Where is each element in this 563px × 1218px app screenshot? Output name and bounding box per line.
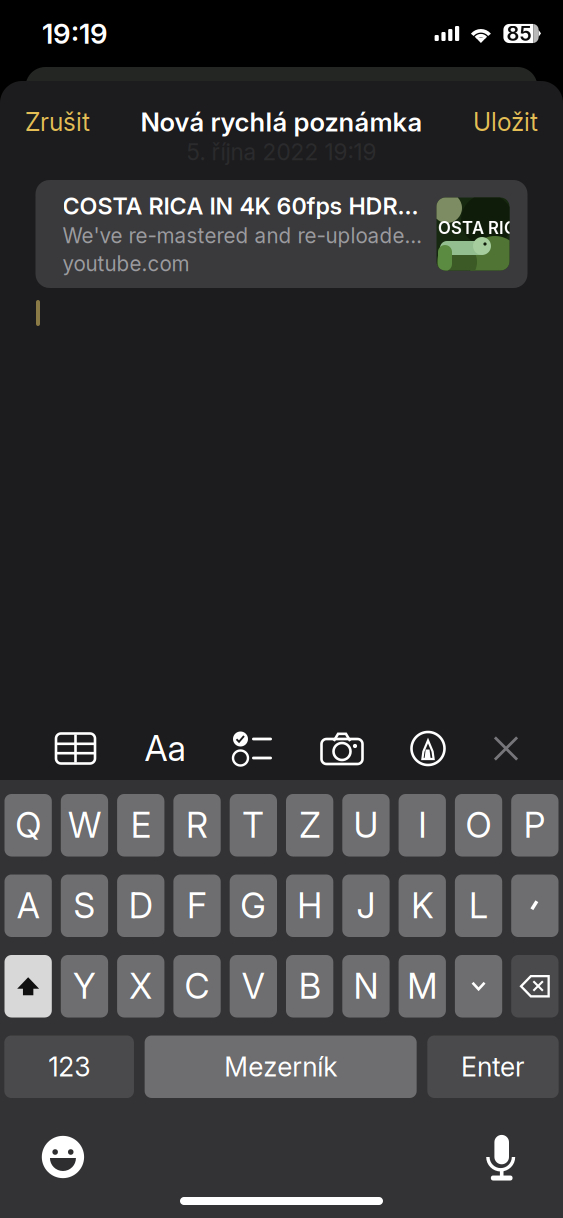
- staticText: X: [129, 965, 152, 1007]
- button[interactable]: Acute accent: [511, 874, 558, 937]
- staticText: J: [356, 885, 375, 927]
- staticText: F: [187, 885, 207, 927]
- staticText: 85: [506, 21, 531, 46]
- button[interactable]: K: [399, 874, 446, 937]
- button[interactable]: Zrušit: [25, 107, 90, 137]
- button[interactable]: I: [399, 794, 446, 856]
- button[interactable]: Emoji keyboard: [42, 1136, 84, 1178]
- button[interactable]: 123: [4, 1035, 134, 1098]
- button[interactable]: J: [342, 874, 390, 937]
- button[interactable]: Enter: [427, 1035, 559, 1098]
- button[interactable]: Uložit: [473, 107, 538, 137]
- button[interactable]: W: [61, 794, 108, 856]
- button[interactable]: Q: [4, 794, 52, 856]
- button[interactable]: Shift: [4, 955, 52, 1017]
- staticText: C: [184, 965, 209, 1007]
- staticText: youtube.com: [62, 251, 189, 276]
- staticText: O: [466, 804, 492, 846]
- button[interactable]: E: [117, 794, 164, 856]
- staticText: Nová rychlá poznámka: [140, 106, 422, 138]
- staticText: Enter: [461, 1051, 525, 1083]
- staticText: A: [17, 885, 40, 927]
- staticText: R: [186, 804, 208, 846]
- staticText: T: [242, 804, 264, 846]
- button[interactable]: Table: [48, 722, 102, 774]
- staticText: Aa: [144, 727, 185, 769]
- button[interactable]: Mezerník: [145, 1035, 417, 1098]
- button[interactable]: F: [173, 874, 221, 937]
- button[interactable]: Caron: [455, 955, 502, 1017]
- staticText: K: [411, 885, 433, 927]
- staticText: COSTA RICA IN 4K 60fps HDR...: [62, 192, 418, 220]
- button[interactable]: Format: [138, 722, 192, 774]
- button[interactable]: D: [117, 874, 164, 937]
- staticText: N: [353, 965, 378, 1007]
- button[interactable]: Delete: [511, 955, 558, 1017]
- button[interactable]: COSTA RICA IN 4K 60fps HDR...: [35, 180, 527, 288]
- button[interactable]: Dictation: [486, 1135, 517, 1179]
- staticText: M: [407, 965, 437, 1007]
- button[interactable]: M: [399, 955, 446, 1017]
- button[interactable]: G: [230, 874, 277, 937]
- button[interactable]: X: [117, 955, 164, 1017]
- staticText: U: [353, 804, 378, 846]
- staticText: We've re-mastered and re-uploaded...: [62, 223, 430, 248]
- staticText: 5. října 2022 19:19: [186, 138, 376, 166]
- button[interactable]: Camera: [315, 722, 369, 774]
- staticText: 19:19: [42, 17, 108, 50]
- staticText: Q: [15, 804, 41, 846]
- staticText: D: [129, 885, 153, 927]
- button[interactable]: O: [455, 794, 502, 856]
- staticText: Zrušit: [25, 107, 90, 137]
- button[interactable]: Checklist: [225, 722, 279, 774]
- staticText: G: [240, 885, 266, 927]
- staticText: W: [68, 804, 101, 846]
- button[interactable]: L: [455, 874, 502, 937]
- button[interactable]: V: [230, 955, 277, 1017]
- staticText: L: [469, 885, 488, 927]
- button[interactable]: P: [511, 794, 558, 856]
- button[interactable]: S: [61, 874, 108, 937]
- button[interactable]: Close keyboard: [479, 722, 533, 774]
- staticText: Z: [299, 804, 320, 846]
- staticText: Mezerník: [224, 1051, 337, 1083]
- button[interactable]: N: [342, 955, 390, 1017]
- staticText: H: [297, 885, 322, 927]
- staticText: 123: [48, 1051, 90, 1083]
- staticText: P: [524, 804, 546, 846]
- staticText: I: [418, 804, 426, 846]
- button[interactable]: A: [4, 874, 52, 937]
- staticText: Y: [73, 965, 96, 1007]
- button[interactable]: C: [173, 955, 221, 1017]
- button[interactable]: H: [286, 874, 333, 937]
- staticText: S: [73, 885, 95, 927]
- staticText: OSTA RIC: [438, 218, 516, 238]
- button[interactable]: Markup: [401, 722, 455, 774]
- staticText: B: [299, 965, 321, 1007]
- staticText: E: [131, 804, 151, 846]
- staticText: Uložit: [473, 107, 538, 137]
- button[interactable]: T: [230, 794, 277, 856]
- button[interactable]: Y: [61, 955, 108, 1017]
- staticText: V: [242, 965, 265, 1007]
- button[interactable]: U: [342, 794, 390, 856]
- button[interactable]: R: [173, 794, 221, 856]
- button[interactable]: Z: [286, 794, 333, 856]
- button[interactable]: B: [286, 955, 333, 1017]
